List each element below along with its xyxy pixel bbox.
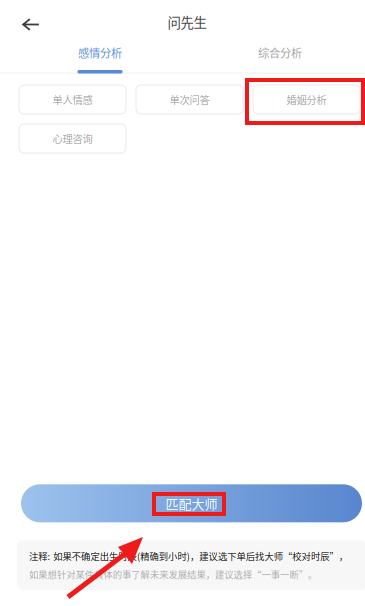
button[interactable]: 婚姻分析 [253,85,360,114]
button[interactable]: 匹配大师 [21,484,362,522]
button[interactable]: 感情分析 [10,44,190,73]
button[interactable]: 心理咨询 [19,124,126,153]
staticText: 心理咨询 [52,131,92,146]
staticText: 注释: 如果不确定出生时辰(精确到小时)，建议选下单后找大师“校对时辰”， [29,549,348,562]
staticText: 婚姻分析 [286,92,326,107]
staticText: 综合分析 [258,44,302,61]
staticText: 单人情感 [52,92,92,107]
button[interactable]: Back [0,0,51,44]
button[interactable]: 单次问答 [136,85,243,114]
button[interactable]: 综合分析 [190,44,365,73]
staticText: 问先生 [167,12,206,32]
staticText: 匹配大师 [165,494,217,513]
button[interactable]: 单人情感 [19,85,126,114]
staticText: 感情分析 [78,44,122,61]
staticText: 如果想针对某件具体的事了解未来发展结果，建议选择“一事一断”。 [29,567,317,581]
staticText: 单次问答 [169,92,209,107]
